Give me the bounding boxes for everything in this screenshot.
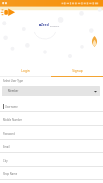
button[interactable]: City <box>0 153 103 167</box>
staticText: Member <box>8 89 19 93</box>
staticText: City <box>3 159 8 163</box>
staticText: Password <box>3 132 15 136</box>
staticText: Signup <box>72 69 83 73</box>
staticText: Email <box>3 145 10 149</box>
button[interactable]: App logo <box>0 8 16 17</box>
other: Open dropdown <box>94 90 97 93</box>
staticText: Zeed <box>41 23 49 27</box>
staticText: Select User Type <box>3 79 23 83</box>
button[interactable]: Username <box>0 98 103 112</box>
button[interactable]: Login <box>0 65 51 77</box>
staticText: Login <box>21 69 30 73</box>
button[interactable]: Email <box>0 139 103 153</box>
staticText: Username <box>5 105 18 109</box>
staticText: Shop Name <box>3 172 18 176</box>
button[interactable]: Signup <box>51 65 103 77</box>
button[interactable]: Mobile Number <box>0 112 103 126</box>
button[interactable]: Member <box>2 86 100 96</box>
staticText: Mobile Number <box>3 118 23 122</box>
staticText: infotech <box>50 24 60 27</box>
button[interactable]: Shop Name <box>0 166 103 180</box>
button[interactable]: Password <box>0 126 103 140</box>
